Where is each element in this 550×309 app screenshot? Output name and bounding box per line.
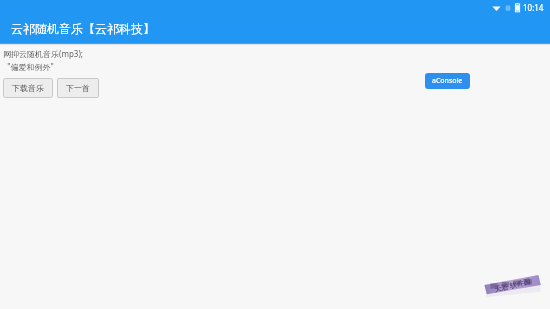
other: SIM card <box>505 4 511 12</box>
staticText: aConsole <box>432 76 463 86</box>
button[interactable]: aConsole <box>425 73 470 89</box>
staticText: 网抑云随机音乐(mp3); <box>3 48 83 59</box>
staticText: 下载音乐 <box>12 83 44 93</box>
staticText: 云祁随机音乐【云祁科技】 <box>11 21 155 36</box>
staticText: 10:14 <box>523 2 544 13</box>
staticText: 下一首 <box>66 83 90 93</box>
staticText: "偏爱和例外" <box>3 61 54 72</box>
staticText: 天若 软件园 <box>493 277 532 295</box>
button[interactable]: 下载音乐 <box>3 78 53 98</box>
other: Wi-Fi <box>492 4 501 12</box>
button[interactable]: 下一首 <box>57 78 99 98</box>
other: Battery <box>515 3 520 12</box>
